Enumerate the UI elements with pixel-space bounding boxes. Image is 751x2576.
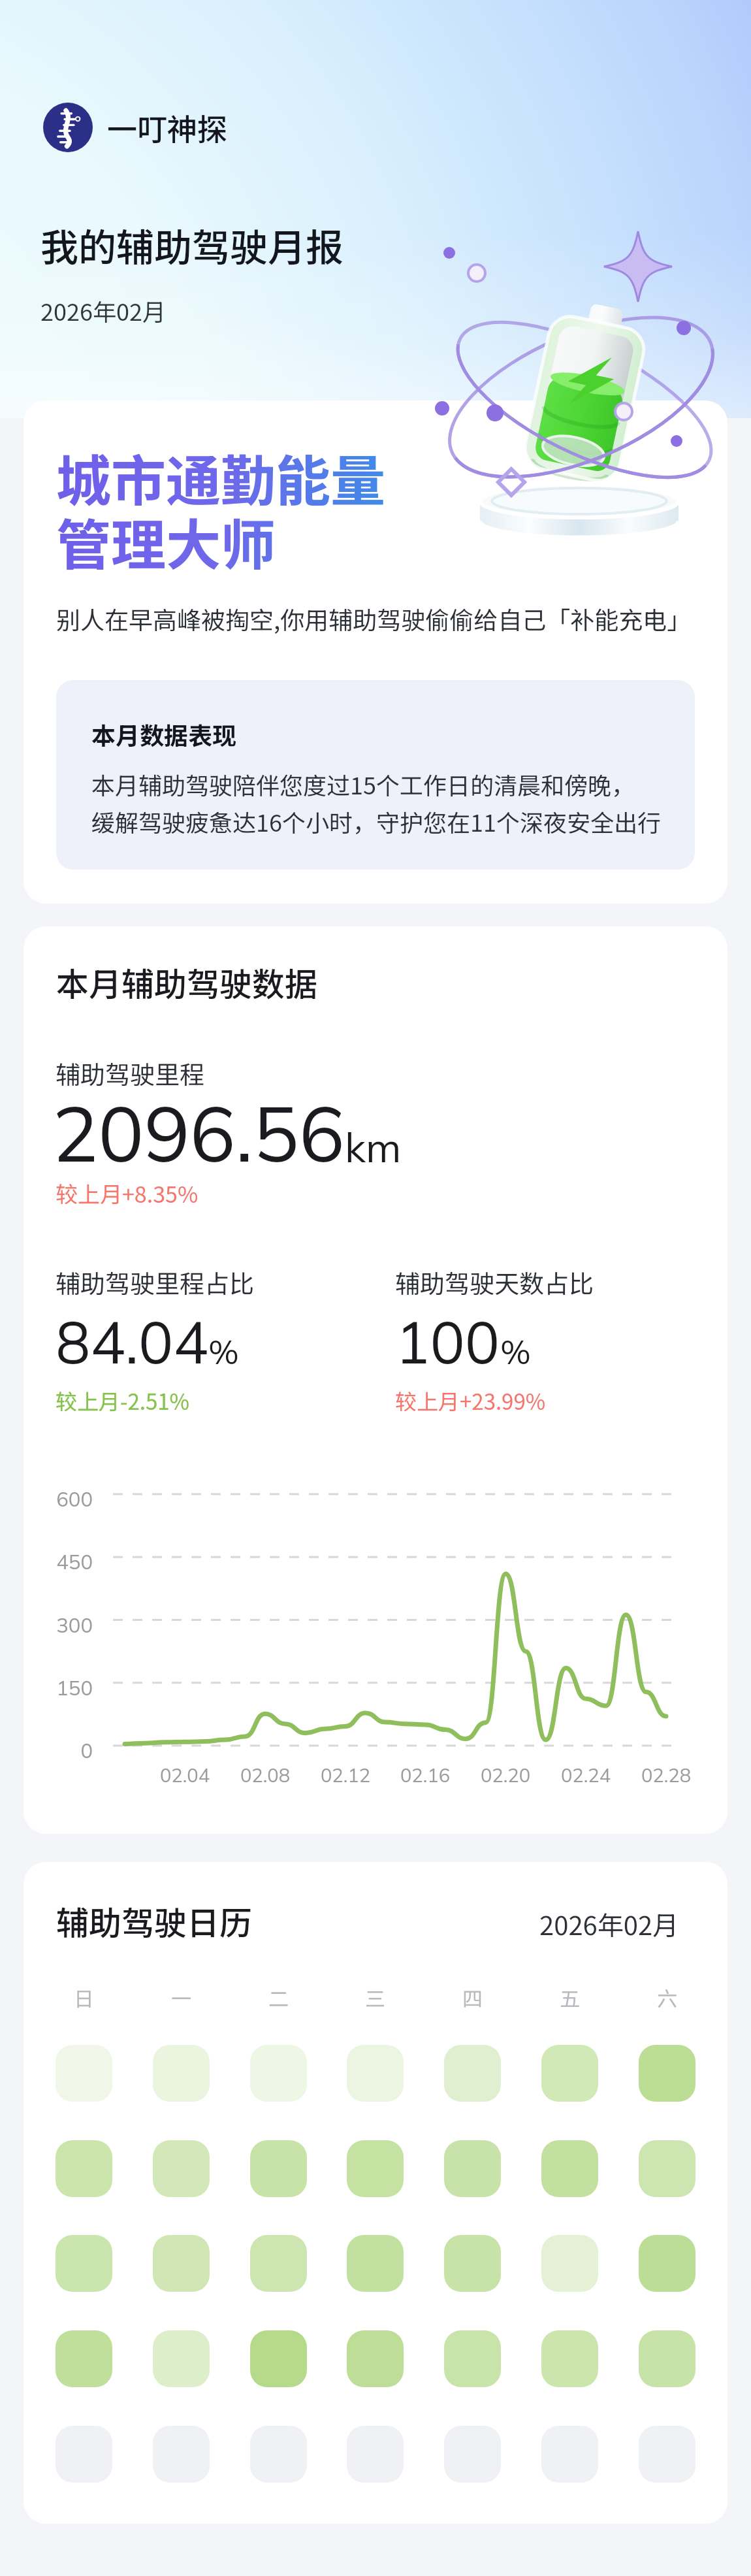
button[interactable] [56,2045,112,2102]
staticText: 2026年02月 [40,293,166,327]
button[interactable] [444,2045,501,2102]
staticText: 300 [24,1612,93,1638]
staticText: 四 [444,1983,501,2012]
staticText: 城市通勤能量 管理大师 [56,438,386,581]
staticText: 02.28 [601,1763,727,1787]
button[interactable] [153,2426,210,2483]
button[interactable] [541,2235,598,2292]
staticText: 0 [24,1738,93,1763]
button[interactable] [347,2426,404,2483]
button[interactable] [639,2045,695,2102]
button[interactable] [347,2235,404,2292]
button[interactable] [347,2330,404,2387]
button[interactable] [541,2330,598,2387]
button[interactable] [250,2045,307,2102]
staticText: 150 [24,1675,93,1701]
staticText: 本月数据表现 [91,717,236,752]
staticText: 84.04 [56,1305,208,1378]
button[interactable] [56,2426,112,2483]
button[interactable] [347,2140,404,2197]
staticText: 辅助驾驶天数占比 [395,1264,594,1300]
button[interactable] [541,2140,598,2197]
button[interactable] [56,2330,112,2387]
button[interactable] [250,2235,307,2292]
staticText: % [208,1331,239,1373]
button[interactable] [541,2045,598,2102]
staticText: 02.20 [440,1763,571,1787]
button[interactable] [347,2045,404,2102]
staticText: 2026年02月 [539,1905,679,1943]
button[interactable] [153,2140,210,2197]
staticText: 一 [153,1983,210,2012]
button[interactable] [153,2235,210,2292]
button[interactable] [541,2426,598,2483]
staticText: 较上月-2.51% [56,1385,189,1416]
staticText: 600 [24,1486,93,1512]
button[interactable] [250,2140,307,2197]
button[interactable] [639,2140,695,2197]
other: 一叮神探 logo [43,103,93,152]
button[interactable] [250,2330,307,2387]
staticText: 本月辅助驾驶陪伴您度过15个工作日的清晨和傍晚， 缓解驾驶疲惫达16个小时，守护… [91,767,661,838]
staticText: 较上月+23.99% [395,1385,546,1416]
staticText: 02.08 [200,1763,330,1787]
button[interactable] [639,2235,695,2292]
button[interactable] [153,2045,210,2102]
staticText: 别人在早高峰被掏空,你用辅助驾驶偷偷给自己「补能充电」 [56,601,692,636]
button[interactable] [444,2330,501,2387]
staticText: 日 [56,1983,112,2012]
button[interactable] [56,2140,112,2197]
button[interactable] [444,2235,501,2292]
staticText: 我的辅助驾驶月报 [40,218,344,272]
staticText: 三 [347,1983,404,2012]
staticText: 五 [541,1983,598,2012]
button[interactable] [639,2330,695,2387]
staticText: 2096.56 [52,1084,345,1181]
button[interactable] [56,2235,112,2292]
staticText: 02.16 [360,1763,490,1787]
button[interactable] [444,2426,501,2483]
staticText: 较上月+8.35% [56,1177,199,1209]
button[interactable] [250,2426,307,2483]
button[interactable] [153,2330,210,2387]
button[interactable] [444,2140,501,2197]
staticText: 02.24 [520,1763,651,1787]
staticText: 本月辅助驾驶数据 [56,958,317,1005]
staticText: 辅助驾驶里程 [56,1055,205,1091]
staticText: 辅助驾驶日历 [56,1897,252,1944]
staticText: 一叮神探 [107,106,227,150]
staticText: 六 [639,1983,695,2012]
button[interactable] [639,2426,695,2483]
staticText: km [345,1122,402,1173]
staticText: % [500,1331,531,1373]
staticText: 02.04 [120,1763,250,1787]
staticText: 辅助驾驶里程占比 [56,1264,255,1300]
staticText: 450 [24,1549,93,1574]
staticText: 100 [395,1305,500,1378]
staticText: 二 [250,1983,307,2012]
staticText: 02.12 [280,1763,411,1787]
button[interactable]: 一叮神探 logo [43,103,227,152]
